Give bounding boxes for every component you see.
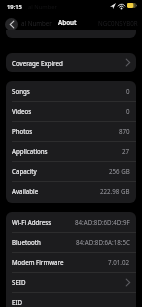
staticText: About <box>58 18 77 27</box>
button[interactable]: EID <box>6 292 136 307</box>
button[interactable]: Capacity <box>6 161 136 181</box>
staticText: SEID <box>12 278 26 286</box>
button[interactable]: Bluetooth <box>6 232 136 252</box>
button[interactable]: Photos <box>6 121 136 141</box>
staticText: NGC0NSYB0R <box>98 19 138 27</box>
staticText: 84:AD:8D:6D:4D:9F <box>75 218 130 226</box>
staticText: al Number <box>28 3 57 11</box>
staticText: 7.01.02 <box>108 258 130 266</box>
staticText: EID <box>12 298 23 306</box>
button[interactable]: Available <box>6 181 136 201</box>
button[interactable]: Coverage Expired <box>6 53 136 72</box>
button[interactable]: SEID <box>6 272 136 292</box>
staticText: Modem Firmware <box>12 258 64 266</box>
button[interactable]: Videos <box>6 101 136 121</box>
button[interactable]: Wi-Fi Address <box>6 212 136 232</box>
staticText: 0 <box>126 107 130 115</box>
staticText: Photos <box>12 127 33 135</box>
staticText: 27 <box>122 147 130 155</box>
button[interactable]: Modem Firmware <box>6 252 136 272</box>
staticText: Wi-Fi Address <box>12 218 52 226</box>
staticText: 19:15 <box>7 3 22 11</box>
staticText: 870 <box>119 127 130 135</box>
staticText: 84:AD:8D:6A:18:5C <box>76 238 130 246</box>
staticText: Applications <box>12 147 48 155</box>
staticText: 0 <box>126 87 130 95</box>
staticText: 256 GB <box>109 167 130 175</box>
staticText: Capacity <box>12 167 37 175</box>
staticText: Songs <box>12 87 30 95</box>
staticText: Bluetooth <box>12 238 41 246</box>
staticText: 222.98 GB <box>100 187 130 195</box>
button[interactable]: Applications <box>6 141 136 161</box>
staticText: Coverage Expired <box>12 59 63 67</box>
button[interactable]: Songs <box>6 81 136 101</box>
staticText: al Number <box>21 19 52 27</box>
staticText: Available <box>12 187 39 195</box>
button[interactable] <box>5 18 18 31</box>
staticText: Videos <box>12 107 32 115</box>
